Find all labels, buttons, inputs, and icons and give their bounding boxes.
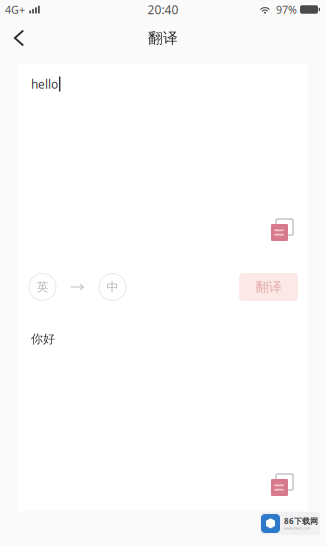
staticText: 97% — [276, 2, 297, 17]
staticText: 翻译 — [255, 279, 281, 295]
staticText: 20:40 — [147, 1, 178, 17]
button[interactable]: Copy translation — [271, 474, 293, 496]
button[interactable]: 英 — [29, 273, 56, 300]
staticText: 你好 — [31, 332, 55, 346]
button[interactable]: 翻译 — [239, 273, 298, 301]
button[interactable]: Back — [4, 23, 34, 53]
staticText: hello — [31, 76, 58, 92]
staticText: 86下载网 — [284, 516, 318, 526]
staticText: 4G+ — [5, 2, 25, 17]
staticText: 中 — [106, 280, 118, 294]
staticText: www.86xz.com — [284, 525, 311, 531]
button[interactable]: Copy source text — [271, 219, 293, 241]
staticText: 翻译 — [148, 29, 178, 47]
button[interactable]: 中 — [99, 273, 126, 300]
staticText: 英 — [36, 280, 48, 294]
